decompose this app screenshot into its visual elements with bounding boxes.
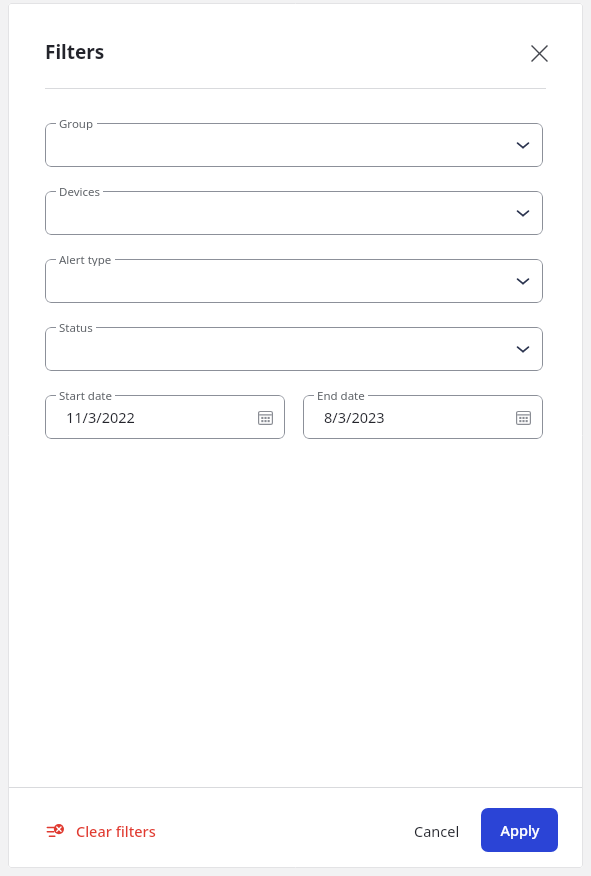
button[interactable] <box>45 123 543 167</box>
staticText: Group <box>59 116 94 130</box>
button[interactable] <box>45 395 285 439</box>
staticText: 8/3/2023 <box>324 407 385 427</box>
staticText: Status <box>59 320 93 334</box>
button[interactable] <box>45 259 543 303</box>
button[interactable]: Apply <box>481 808 558 852</box>
other: Open calendar <box>258 410 273 425</box>
button[interactable]: Clear filters <box>41 811 162 851</box>
button[interactable]: Close <box>516 30 562 76</box>
staticText: Start date <box>59 388 112 402</box>
button[interactable] <box>303 395 543 439</box>
staticText: Filters <box>45 39 105 65</box>
staticText: End date <box>317 388 365 402</box>
button[interactable] <box>45 327 543 371</box>
staticText: Clear filters <box>76 821 156 841</box>
staticText: Alert type <box>59 252 112 266</box>
staticText: Apply <box>500 820 540 840</box>
button[interactable]: Cancel <box>402 811 472 851</box>
staticText: Devices <box>59 184 100 198</box>
other: Open calendar <box>516 410 531 425</box>
staticText: Cancel <box>414 821 460 841</box>
staticText: 11/3/2022 <box>66 407 135 427</box>
button[interactable] <box>45 191 543 235</box>
